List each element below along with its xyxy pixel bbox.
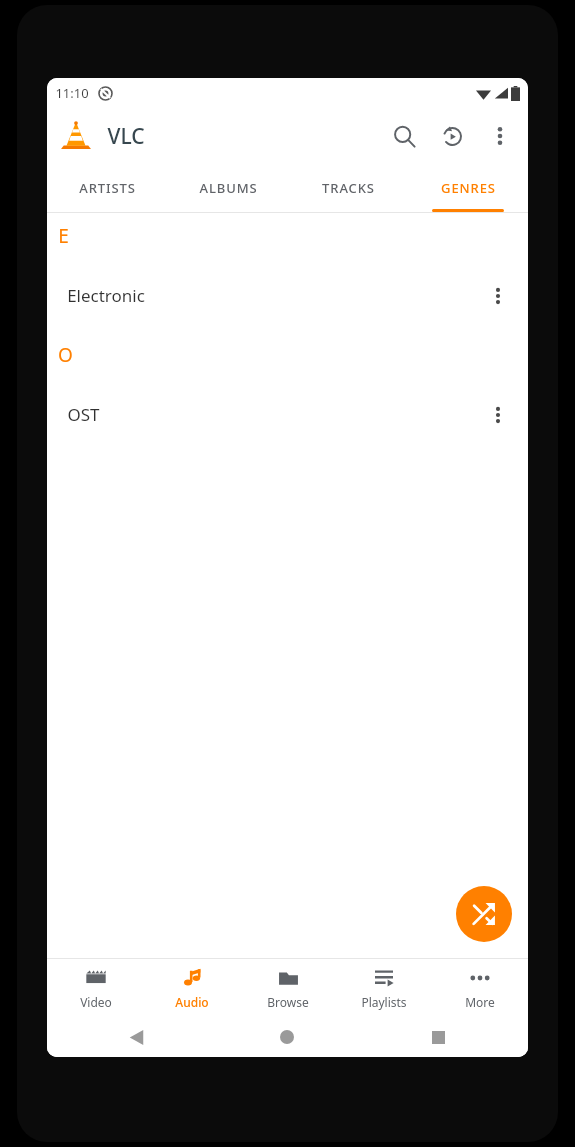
button[interactable]: Search [380,112,428,160]
button[interactable]: Browse [240,959,336,1017]
button[interactable]: ARTISTS [47,164,168,212]
button[interactable]: Playback history [428,112,476,160]
button[interactable]: Playlists [336,959,432,1017]
button[interactable]: Back [119,1020,153,1054]
button[interactable]: More [432,959,528,1017]
button[interactable]: Recents [421,1020,455,1054]
staticText: OST [67,403,100,426]
button[interactable]: Shuffle all [456,886,512,942]
staticText: 11:10 [55,84,89,102]
button[interactable]: Electronic [47,259,528,332]
staticText: ALBUMS [199,179,258,197]
staticText: Video [80,994,112,1010]
button[interactable]: More options [476,112,524,160]
staticText: VLC [107,122,145,151]
button[interactable]: ALBUMS [168,164,288,212]
button[interactable]: More options for OST [474,391,522,439]
button[interactable]: More options for Electronic [474,272,522,320]
button[interactable]: Home [270,1020,304,1054]
staticText: Audio [175,994,209,1010]
staticText: Electronic [67,284,145,307]
button[interactable]: GENRES [408,164,528,212]
button[interactable]: OST [47,378,528,451]
button[interactable]: TRACKS [288,164,408,212]
staticText: E [58,223,69,249]
staticText: O [58,342,73,368]
button[interactable]: Audio [144,959,240,1017]
staticText: ARTISTS [79,179,136,197]
staticText: Playlists [361,994,407,1010]
staticText: GENRES [441,179,496,197]
staticText: Browse [267,994,309,1010]
staticText: TRACKS [322,179,375,197]
staticText: More [465,994,495,1010]
button[interactable]: Video [47,959,144,1017]
